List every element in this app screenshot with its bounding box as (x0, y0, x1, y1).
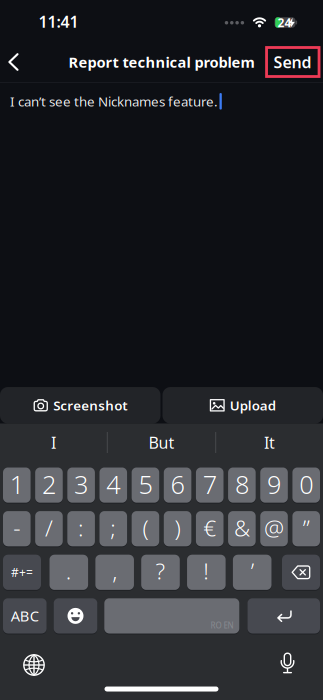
staticText: 9 (267, 467, 281, 501)
button[interactable]: It (219, 425, 319, 459)
button[interactable]: 9 (260, 467, 288, 503)
staticText: I (51, 432, 56, 453)
staticText: ? (155, 556, 165, 586)
staticText: 7 (203, 467, 217, 501)
button[interactable]: Screenshot (0, 387, 160, 424)
button[interactable]: Dictate (267, 648, 307, 682)
staticText: : (78, 513, 84, 543)
button[interactable]: Next keyboard (14, 648, 54, 682)
button[interactable]: € (196, 511, 223, 546)
staticText: 1 (10, 467, 24, 501)
button[interactable]: Emoji (54, 598, 97, 633)
button[interactable]: - (3, 511, 31, 546)
button[interactable]: 5 (132, 467, 159, 503)
button[interactable]: ( (132, 511, 159, 546)
staticText: But (148, 432, 174, 453)
staticText: 6 (171, 467, 185, 501)
button[interactable]: 6 (164, 467, 191, 503)
button[interactable]: ’ (233, 555, 271, 590)
button[interactable]: Space (104, 598, 239, 633)
staticText: 8 (235, 467, 249, 501)
staticText: 24 (277, 15, 291, 31)
staticText: ! (203, 556, 209, 586)
staticText: € (203, 513, 216, 543)
staticText: ) (175, 513, 181, 543)
staticText: . (66, 556, 72, 586)
button[interactable]: 1 (3, 467, 31, 503)
button[interactable]: 7 (196, 467, 223, 503)
staticText: - (13, 513, 20, 543)
staticText: 5 (138, 467, 152, 501)
staticText: It (264, 432, 275, 453)
staticText: Send (273, 51, 311, 73)
button[interactable]: Upload (162, 387, 323, 424)
staticText: I can’t see the Nicknames feature. (10, 92, 218, 110)
button[interactable]: 2 (35, 467, 63, 503)
staticText: ABC (11, 606, 39, 626)
staticText: , (112, 556, 117, 586)
staticText: Upload (230, 396, 276, 414)
button[interactable]: 8 (228, 467, 256, 503)
staticText: 11:41 (38, 11, 78, 32)
button[interactable]: ? (141, 555, 180, 590)
button[interactable]: @ (260, 511, 288, 546)
button[interactable]: 0 (292, 467, 320, 503)
button[interactable]: : (67, 511, 95, 546)
staticText: 2 (42, 467, 56, 501)
button[interactable]: Delete (282, 555, 320, 590)
staticText: & (234, 513, 250, 543)
staticText: 0 (299, 467, 313, 501)
button[interactable]: . (49, 555, 88, 590)
staticText: ’ (251, 556, 254, 586)
button[interactable]: ; (99, 511, 127, 546)
button[interactable]: 4 (99, 467, 127, 503)
button[interactable]: & (228, 511, 256, 546)
button[interactable]: I (4, 425, 104, 459)
button[interactable]: ! (187, 555, 226, 590)
staticText: Screenshot (53, 396, 127, 414)
staticText: 3 (74, 467, 88, 501)
staticText: ( (142, 513, 148, 543)
button[interactable]: Send (270, 49, 314, 75)
button[interactable]: ) (164, 511, 191, 546)
button[interactable]: ” (292, 511, 320, 546)
staticText: 4 (106, 467, 120, 501)
button[interactable]: Symbols (3, 555, 41, 590)
button[interactable]: / (35, 511, 63, 546)
staticText: / (45, 513, 53, 543)
button[interactable]: 3 (67, 467, 95, 503)
button[interactable]: Letters (3, 598, 47, 633)
staticText: ; (110, 513, 116, 543)
staticText: ” (303, 513, 310, 543)
staticText: RO EN (210, 620, 233, 631)
button[interactable]: Return (247, 598, 320, 633)
staticText: #+= (11, 564, 33, 580)
button[interactable]: But (111, 425, 211, 459)
staticText: Report technical problem (68, 52, 254, 72)
button[interactable]: Back (0, 43, 28, 81)
staticText: @ (264, 513, 284, 543)
button[interactable]: , (95, 555, 134, 590)
